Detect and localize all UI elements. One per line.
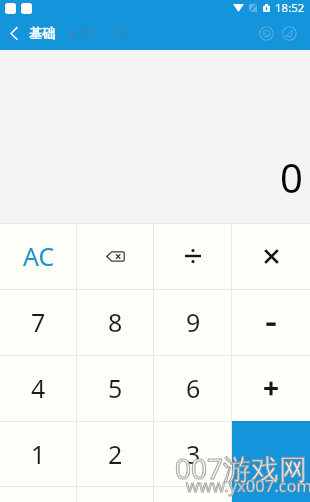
button[interactable]: 1 — [0, 421, 77, 487]
staticText: 5 — [108, 371, 123, 405]
button[interactable]: 汇率 — [107, 26, 133, 41]
button[interactable] — [0, 486, 77, 502]
button[interactable]: 7 — [0, 289, 77, 355]
staticText: AC — [23, 239, 55, 273]
button[interactable]: Share — [280, 24, 299, 43]
button[interactable]: AC — [0, 223, 77, 289]
staticText: 3 — [186, 437, 201, 471]
button[interactable] — [77, 223, 154, 289]
staticText: 4 — [31, 371, 46, 405]
button[interactable]: 科学 — [68, 26, 94, 41]
staticText: 007游戏网 — [175, 449, 308, 487]
staticText: 7 — [31, 305, 46, 339]
button[interactable]: 9 — [154, 289, 232, 355]
staticText: 18:52 — [275, 0, 305, 16]
button[interactable]: 6 — [154, 355, 232, 421]
staticText: 1 — [31, 437, 46, 471]
staticText: www.yx007.com — [186, 474, 310, 496]
staticText: 0 — [280, 150, 303, 204]
staticText: 汇率 — [108, 26, 132, 41]
button[interactable]: 基础 — [28, 25, 56, 41]
button[interactable]: 3 — [154, 421, 232, 487]
button[interactable] — [154, 223, 232, 289]
button[interactable]: 2 — [77, 421, 154, 487]
button[interactable]: Theme — [257, 24, 276, 43]
staticText: 6 — [186, 371, 201, 405]
button[interactable]: 5 — [77, 355, 154, 421]
staticText: www.yx007.com — [186, 474, 310, 496]
button[interactable]: 8 — [77, 289, 154, 355]
button[interactable] — [154, 486, 232, 502]
staticText: 科学 — [69, 26, 93, 41]
button[interactable] — [232, 289, 310, 355]
button[interactable] — [232, 486, 310, 502]
staticText: 007游戏网 — [175, 449, 308, 487]
staticText: 8 — [108, 305, 123, 339]
staticText: 基础 — [29, 25, 55, 41]
staticText: 2 — [108, 437, 123, 471]
button[interactable] — [232, 421, 310, 487]
button[interactable] — [77, 486, 154, 502]
staticText: 9 — [186, 305, 201, 339]
button[interactable]: Back — [0, 19, 28, 47]
button[interactable] — [232, 355, 310, 421]
button[interactable] — [232, 223, 310, 289]
button[interactable]: 4 — [0, 355, 77, 421]
